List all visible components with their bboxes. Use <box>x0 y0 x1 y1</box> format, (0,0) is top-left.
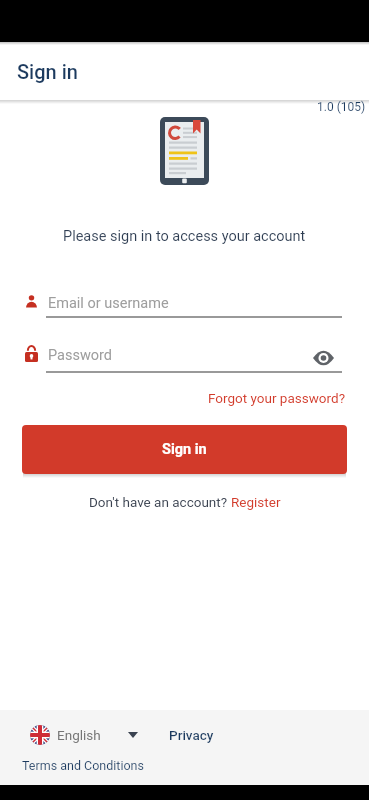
button[interactable]: Sign in <box>22 425 347 474</box>
staticText: Please sign in to access your account <box>63 228 306 245</box>
button[interactable]: Email or username <box>22 290 347 320</box>
staticText: English <box>57 727 101 743</box>
button[interactable]: Privacy <box>169 727 214 743</box>
staticText: Don't have an account? <box>89 494 231 510</box>
staticText: Password <box>48 347 113 364</box>
button[interactable] <box>313 351 334 365</box>
staticText: Sign in <box>17 60 78 83</box>
button[interactable]: Password <box>22 342 347 372</box>
staticText: Sign in <box>162 441 207 458</box>
button[interactable]: Terms and Conditions <box>22 758 144 773</box>
button[interactable]: Forgot your password? <box>208 390 346 406</box>
staticText: Email or username <box>48 295 169 312</box>
button[interactable]: Register <box>231 494 281 510</box>
button[interactable]: English <box>30 725 138 745</box>
staticText: 1.0 (105) <box>317 100 366 114</box>
